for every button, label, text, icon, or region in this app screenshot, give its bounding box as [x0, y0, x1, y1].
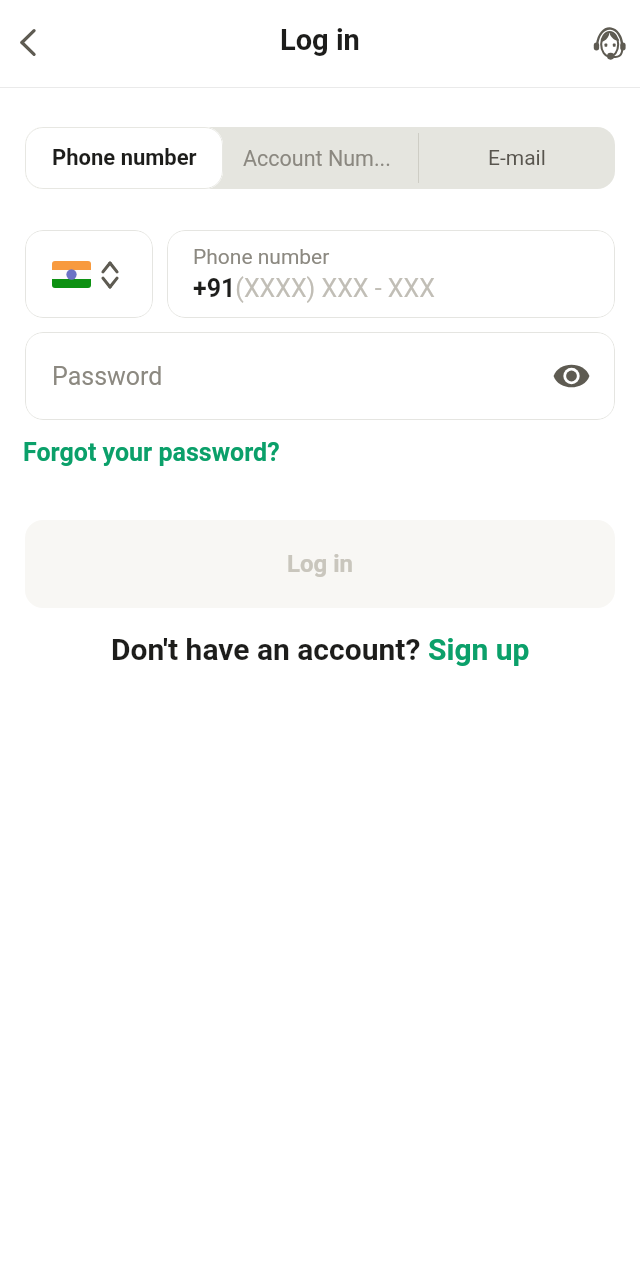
staticText: Account Num... — [243, 146, 391, 171]
button[interactable]: Sign up — [428, 632, 530, 667]
staticText: Phone number — [193, 245, 330, 270]
button[interactable]: Phone number — [25, 127, 223, 189]
button[interactable]: Back — [4, 19, 51, 66]
staticText: +91(XXXX) XXX - XXX — [193, 274, 435, 303]
staticText: Don't have an account? — [111, 632, 428, 667]
staticText: Log in — [287, 550, 354, 578]
staticText: Password — [52, 362, 163, 391]
button[interactable]: Show password — [547, 352, 595, 400]
button[interactable]: Log in — [25, 520, 615, 608]
staticText: Sign up — [428, 632, 530, 667]
button[interactable]: E-mail — [418, 127, 615, 189]
staticText: E-mail — [488, 146, 546, 171]
button[interactable]: Forgot your password? — [23, 438, 280, 467]
staticText: Forgot your password? — [23, 438, 280, 467]
staticText: Phone number — [52, 145, 197, 171]
staticText: Log in — [280, 23, 360, 57]
button[interactable]: Account Num... — [223, 127, 418, 189]
button[interactable]: Customer support — [585, 19, 632, 66]
button[interactable]: Phone number — [167, 230, 615, 318]
button[interactable]: Select country code — [25, 230, 153, 318]
button[interactable]: Password — [25, 332, 615, 420]
